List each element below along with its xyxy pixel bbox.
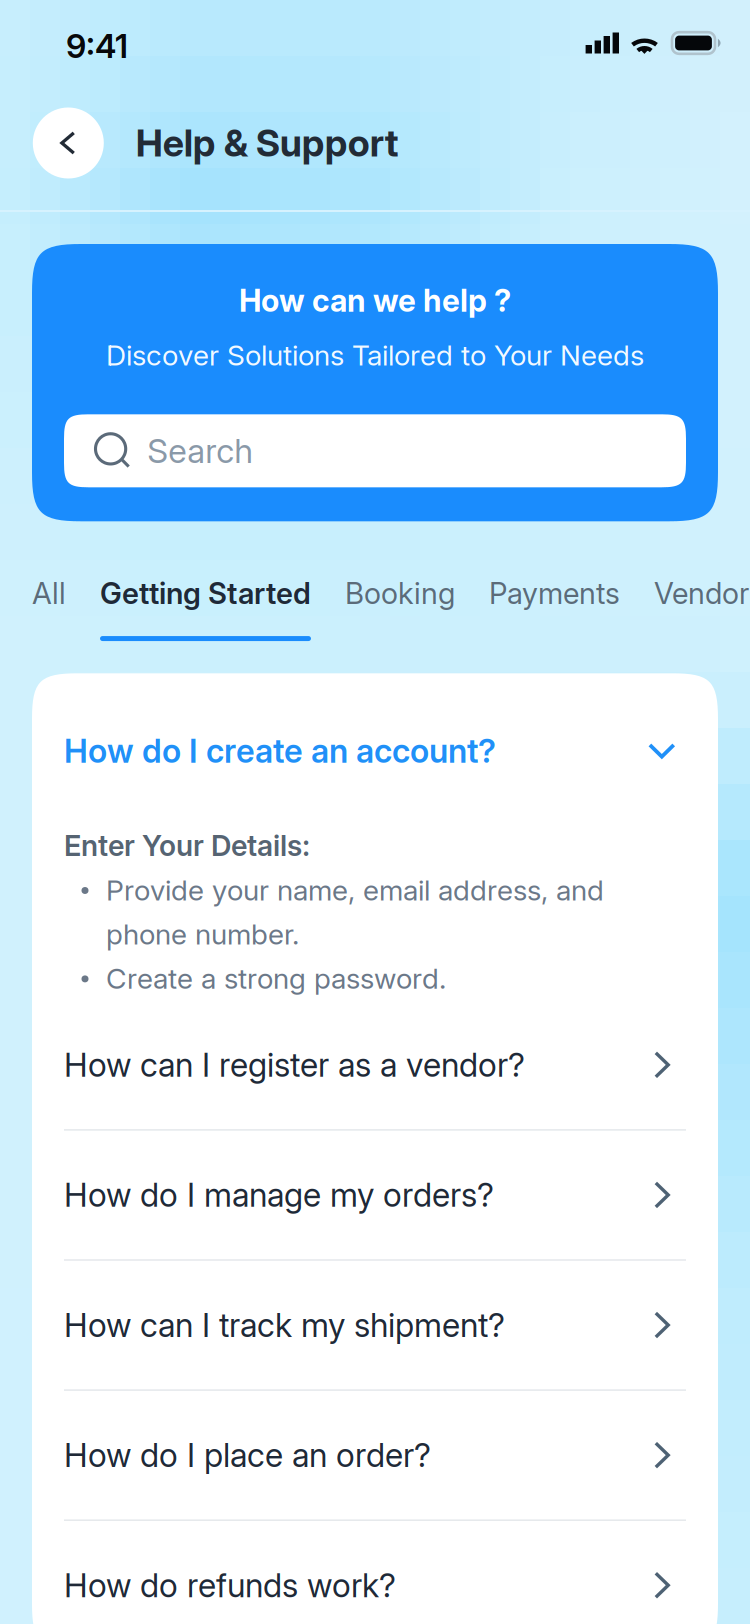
staticText: How do I place an order? — [64, 1435, 431, 1475]
button[interactable]: How can I track my shipment? — [32, 1261, 718, 1389]
button[interactable]: How can I register as a vendor? — [32, 1001, 718, 1129]
staticText: 9:41 — [66, 26, 128, 66]
staticText: All — [32, 576, 66, 611]
staticText: Payments — [489, 576, 620, 611]
staticText: Search — [147, 431, 253, 471]
staticText: Enter Your Details: — [64, 828, 310, 863]
staticText: Help & Support — [136, 120, 399, 166]
staticText: How can I track my shipment? — [64, 1305, 505, 1345]
button[interactable]: Payments — [489, 576, 620, 641]
button[interactable]: How do I manage my orders? — [32, 1131, 718, 1259]
button[interactable]: Booking — [345, 576, 455, 641]
staticText: Booking — [345, 576, 455, 611]
button[interactable]: How do I place an order? — [32, 1391, 718, 1519]
staticText: How do I create an account? — [64, 731, 496, 770]
button[interactable]: How do I create an account? — [32, 673, 718, 828]
staticText: Discover Solutions Tailored to Your Need… — [106, 338, 644, 372]
staticText: How can we help ? — [239, 282, 511, 319]
button[interactable]: Back — [33, 107, 104, 178]
staticText: Provide your name, email address, and ph… — [106, 873, 604, 951]
staticText: How do I manage my orders? — [64, 1175, 494, 1215]
staticText: Create a strong password. — [106, 961, 446, 996]
staticText: Vendors — [654, 576, 750, 611]
staticText: Getting Started — [100, 576, 311, 611]
button[interactable]: Vendors — [654, 576, 750, 641]
button[interactable]: All — [32, 576, 66, 641]
button[interactable]: Getting Started — [100, 576, 311, 641]
staticText: How do refunds work? — [64, 1565, 396, 1605]
button[interactable]: How do refunds work? — [32, 1521, 718, 1624]
staticText: How can I register as a vendor? — [64, 1045, 525, 1085]
